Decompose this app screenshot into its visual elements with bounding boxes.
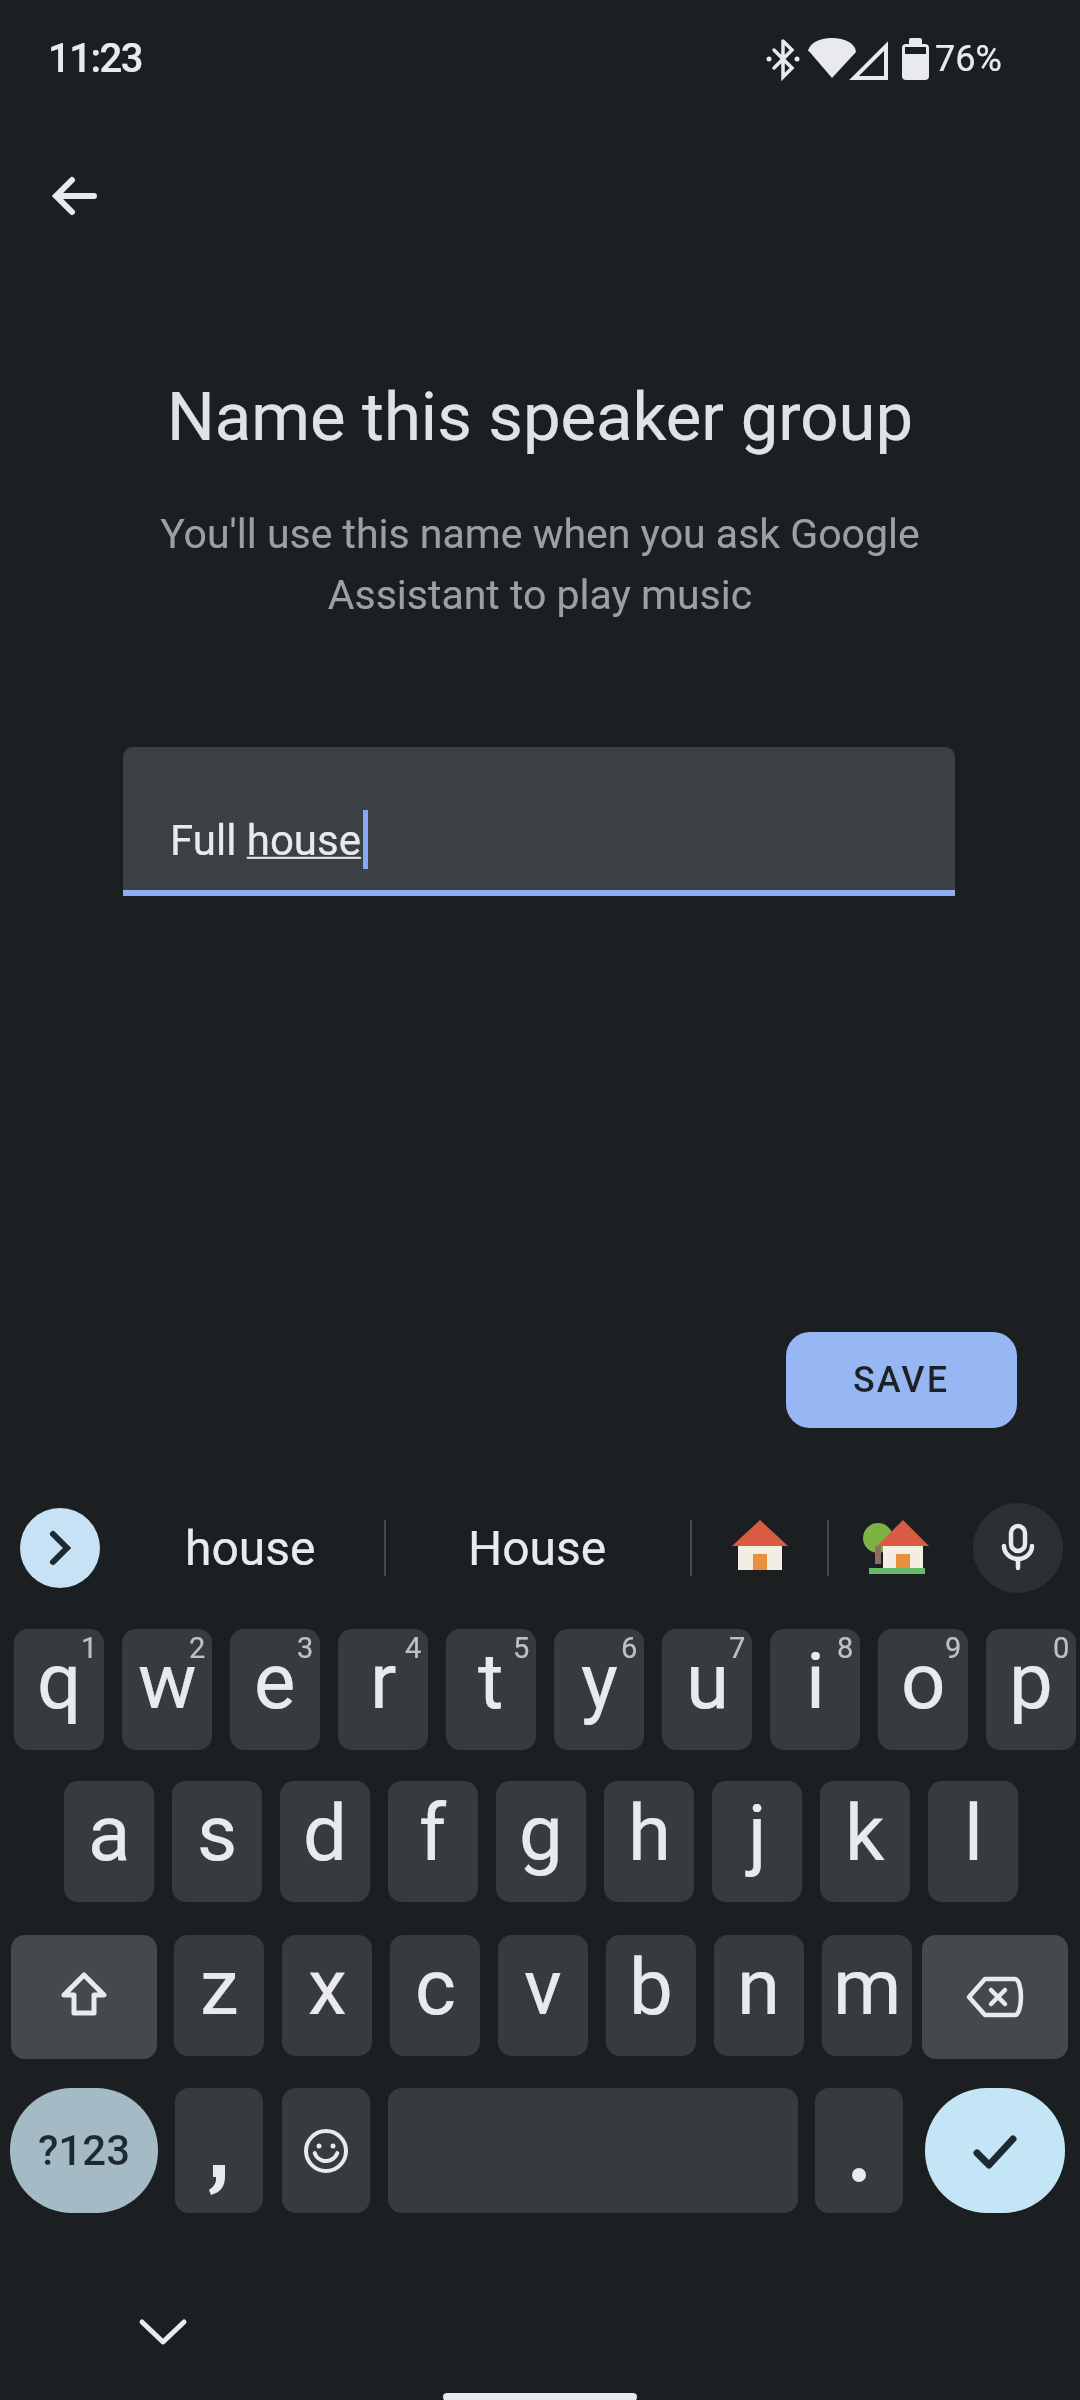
button[interactable] (722, 1510, 798, 1586)
staticText: e (254, 1636, 296, 1727)
button[interactable]: c (390, 1935, 480, 2056)
staticText: 0 (1053, 1631, 1070, 1665)
button[interactable]: o (878, 1629, 968, 1750)
button[interactable]: d (280, 1781, 370, 1902)
button[interactable] (925, 2088, 1065, 2213)
button[interactable]: b (606, 1935, 696, 2056)
button[interactable] (175, 2088, 263, 2213)
staticText: a (88, 1788, 131, 1879)
staticText: 4 (405, 1631, 422, 1665)
button[interactable] (20, 1508, 100, 1588)
button[interactable]: u (662, 1629, 752, 1750)
staticText: w (138, 1636, 197, 1727)
button[interactable]: m (822, 1935, 912, 2056)
button[interactable]: g (496, 1781, 586, 1902)
staticText: i (806, 1636, 825, 1727)
button[interactable]: x (282, 1935, 372, 2056)
staticText: k (845, 1788, 885, 1879)
staticText: b (629, 1942, 673, 2033)
button[interactable] (815, 2088, 903, 2213)
staticText: o (901, 1636, 946, 1727)
staticText: 9 (945, 1631, 962, 1665)
staticText: SAVE (853, 1359, 950, 1401)
staticText: x (308, 1942, 347, 2033)
staticText: Full house (170, 816, 361, 865)
staticText: 6 (621, 1631, 638, 1665)
staticText: 5 (513, 1631, 530, 1665)
staticText: House (468, 1520, 607, 1576)
button[interactable]: SAVE (786, 1332, 1017, 1428)
staticText: 2 (189, 1631, 206, 1665)
staticText: t (478, 1636, 504, 1727)
staticText: j (748, 1788, 767, 1879)
staticText: Name this speaker group (0, 378, 1080, 457)
button[interactable]: n (714, 1935, 804, 2056)
button[interactable]: Full house (123, 747, 955, 896)
button[interactable] (973, 1503, 1063, 1593)
staticText: r (370, 1636, 397, 1727)
staticText: v (524, 1942, 562, 2033)
staticText: q (37, 1636, 82, 1727)
button[interactable] (922, 1935, 1068, 2059)
button[interactable]: t (446, 1629, 536, 1750)
staticText: l (964, 1788, 983, 1879)
staticText: You'll use this name when you ask Google… (0, 510, 1080, 619)
button[interactable]: j (712, 1781, 802, 1902)
staticText: s (197, 1788, 238, 1879)
button[interactable] (859, 1510, 935, 1586)
button[interactable]: s (172, 1781, 262, 1902)
staticText: y (581, 1636, 618, 1727)
button[interactable]: i (770, 1629, 860, 1750)
button[interactable]: r (338, 1629, 428, 1750)
button[interactable] (282, 2088, 370, 2213)
staticText: 1 (81, 1631, 98, 1665)
staticText: u (686, 1636, 729, 1727)
button[interactable]: k (820, 1781, 910, 1902)
button[interactable]: house (120, 1508, 380, 1588)
staticText: n (737, 1942, 781, 2033)
button[interactable]: q (14, 1629, 104, 1750)
button[interactable]: e (230, 1629, 320, 1750)
staticText: f (419, 1788, 447, 1879)
button[interactable]: w (122, 1629, 212, 1750)
button[interactable] (11, 1935, 157, 2059)
staticText: d (303, 1788, 347, 1879)
staticText: 7 (729, 1631, 746, 1665)
button[interactable]: l (928, 1781, 1018, 1902)
staticText: h (628, 1788, 671, 1879)
staticText: 76% (935, 38, 1002, 80)
button[interactable]: ?123 (10, 2088, 158, 2213)
staticText: 8 (837, 1631, 854, 1665)
button[interactable]: y (554, 1629, 644, 1750)
staticText: 11:23 (48, 35, 143, 82)
button[interactable] (127, 2300, 199, 2364)
button[interactable]: v (498, 1935, 588, 2056)
staticText: m (833, 1942, 902, 2033)
button[interactable]: z (174, 1935, 264, 2056)
button[interactable] (38, 160, 110, 232)
button[interactable]: h (604, 1781, 694, 1902)
staticText: house (185, 1520, 316, 1576)
staticText: p (1009, 1636, 1053, 1727)
staticText: z (200, 1942, 239, 2033)
button[interactable]: f (388, 1781, 478, 1902)
button[interactable]: House (407, 1508, 667, 1588)
staticText: c (415, 1942, 456, 2033)
button[interactable]: a (64, 1781, 154, 1902)
button[interactable]: p (986, 1629, 1076, 1750)
staticText: 3 (297, 1631, 314, 1665)
staticText: g (519, 1788, 563, 1879)
staticText: ?123 (38, 2126, 131, 2175)
